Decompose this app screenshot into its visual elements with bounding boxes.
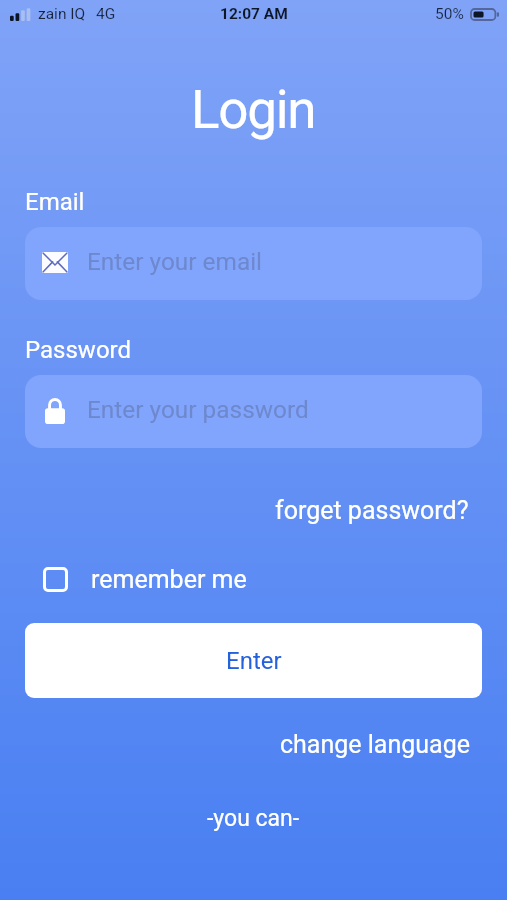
- staticText: Enter your password: [87, 395, 309, 424]
- staticText: Login: [191, 79, 316, 141]
- staticText: Email: [25, 188, 85, 216]
- staticText: 4G: [96, 5, 116, 23]
- staticText: 50%: [435, 5, 464, 23]
- staticText: Enter: [226, 647, 282, 675]
- staticText: remember me: [91, 565, 247, 594]
- button[interactable]: forget password?: [275, 496, 469, 525]
- staticText: Enter your email: [87, 247, 263, 276]
- button[interactable]: remember me: [43, 565, 247, 594]
- button[interactable]: Enter your password: [25, 375, 482, 448]
- staticText: Password: [25, 336, 132, 364]
- staticText: 12:07 AM: [220, 5, 288, 23]
- staticText: -you can-: [207, 805, 300, 832]
- button[interactable]: Enter your email: [25, 227, 482, 300]
- button[interactable]: Enter: [25, 623, 482, 698]
- staticText: zain IQ: [38, 5, 86, 23]
- button[interactable]: change language: [280, 730, 470, 759]
